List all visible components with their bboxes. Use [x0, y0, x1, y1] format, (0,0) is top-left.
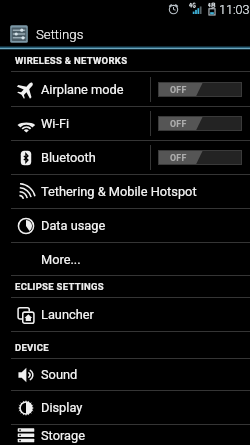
- staticText: OFF: [170, 153, 187, 163]
- staticText: Settings: [36, 27, 84, 42]
- button[interactable]: More...: [0, 243, 250, 276]
- button[interactable]: OFF: [151, 72, 250, 106]
- staticText: 11:03: [219, 2, 250, 17]
- button[interactable]: Sound: [0, 359, 250, 391]
- button[interactable]: Storage: [0, 425, 250, 445]
- button[interactable]: Data usage: [0, 209, 250, 243]
- staticText: Launcher: [41, 307, 94, 322]
- button[interactable]: OFF: [151, 107, 250, 140]
- staticText: Wi-Fi: [41, 116, 70, 131]
- button[interactable]: Airplane mode: [17, 72, 150, 106]
- staticText: OFF: [170, 119, 187, 129]
- button[interactable]: Launcher: [0, 298, 250, 332]
- staticText: Data usage: [41, 218, 106, 233]
- staticText: Sound: [41, 367, 78, 382]
- staticText: WIRELESS & NETWORKS: [15, 55, 128, 66]
- staticText: More...: [41, 252, 81, 267]
- button[interactable]: Wi-Fi: [17, 107, 150, 140]
- button[interactable]: Tethering & Mobile Hotspot: [0, 175, 250, 209]
- staticText: DEVICE: [15, 342, 49, 353]
- staticText: Bluetooth: [41, 150, 96, 165]
- staticText: Display: [41, 400, 83, 415]
- staticText: Tethering & Mobile Hotspot: [41, 184, 197, 199]
- staticText: Storage: [41, 428, 85, 443]
- staticText: OFF: [170, 85, 187, 95]
- button[interactable]: OFF: [151, 141, 250, 174]
- button[interactable]: Bluetooth: [17, 141, 150, 174]
- button[interactable]: Display: [0, 391, 250, 425]
- staticText: ECLIPSE SETTINGS: [15, 281, 104, 292]
- staticText: Airplane mode: [41, 82, 124, 97]
